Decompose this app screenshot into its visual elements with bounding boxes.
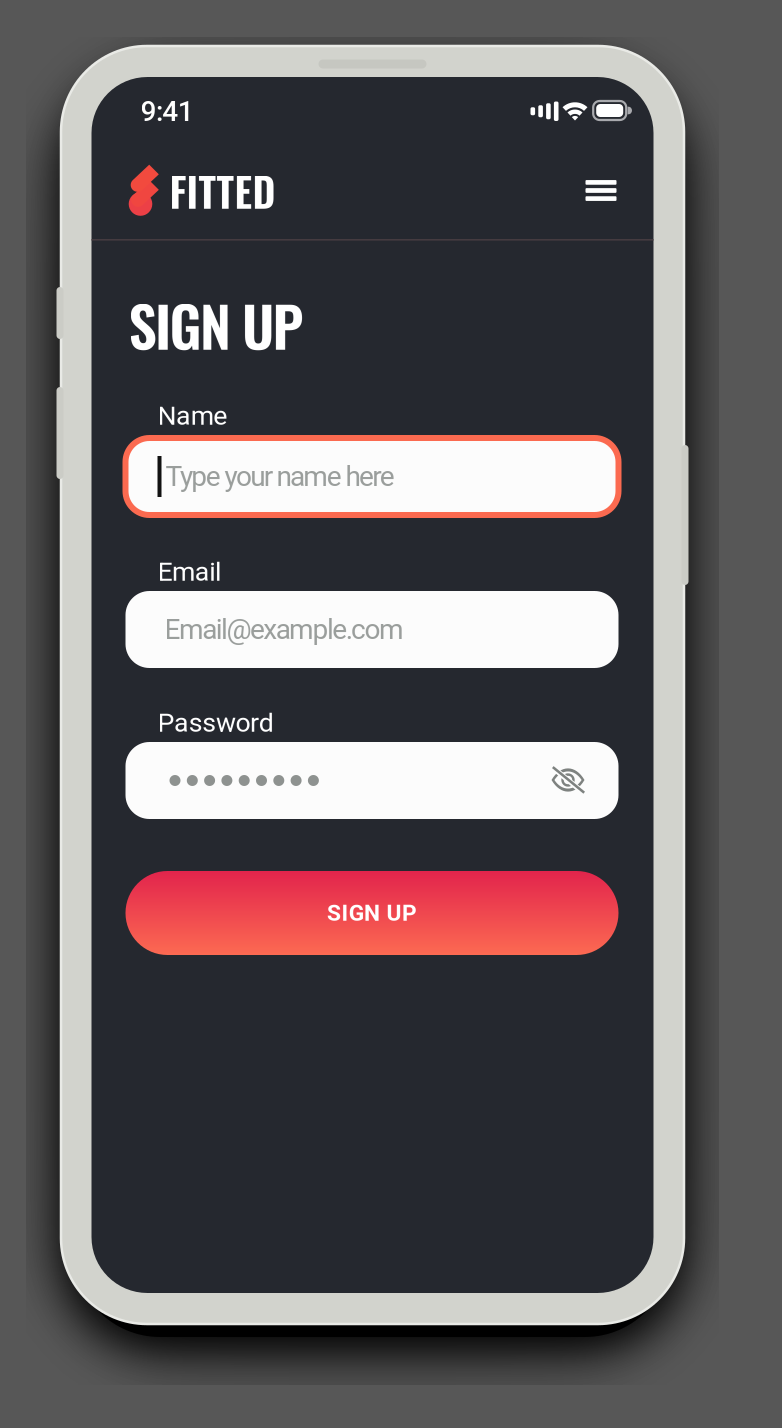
staticText: Email@example.com	[164, 613, 404, 646]
staticText: Name	[157, 400, 227, 431]
staticText: FITTED	[169, 161, 275, 220]
button[interactable]: Type your name here	[125, 438, 618, 515]
staticText: SIGN UP	[128, 283, 303, 366]
staticText: Email	[157, 556, 221, 587]
staticText: Type your name here	[165, 460, 395, 493]
staticText: 9:41	[140, 95, 194, 128]
button[interactable]: SIGN UP	[125, 871, 618, 955]
staticText: Password	[157, 707, 274, 738]
staticText: SIGN UP	[327, 900, 417, 926]
button[interactable]: Show password	[544, 756, 592, 804]
button[interactable]	[125, 742, 618, 819]
button[interactable]: Email@example.com	[125, 591, 618, 668]
button[interactable]: Menu	[579, 170, 622, 211]
